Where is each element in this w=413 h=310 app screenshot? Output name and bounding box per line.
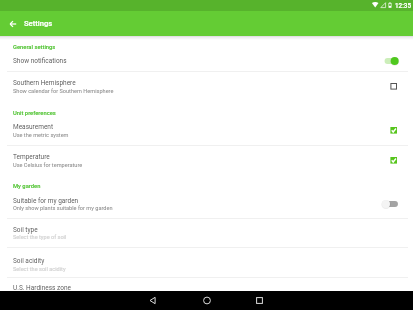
staticText: Soil acidity [13,257,45,265]
button[interactable]: Southern Hemisphere [0,72,413,100]
button[interactable]: Navigate up [3,12,23,36]
staticText: U.S. Hardiness zone [13,284,71,292]
button[interactable]: Suitable for my garden toggle, off [381,197,403,211]
staticText: Show calendar for Southern Hemisphere [13,88,114,95]
staticText: General settings [13,44,56,51]
button[interactable]: Home [188,291,225,310]
staticText: Select the type of soil [13,234,67,241]
staticText: My garden [13,183,41,190]
button[interactable]: Back [134,291,171,310]
button[interactable]: Recent apps [241,291,278,310]
button[interactable]: Show notifications toggle, on [381,54,403,68]
staticText: Only show plants suitable for my garden [13,205,113,212]
staticText: Soil type [13,226,38,234]
button[interactable]: Checkbox, checked [386,153,401,168]
button[interactable]: Show notifications [0,52,413,72]
button[interactable]: Temperature [0,146,413,175]
button[interactable]: Suitable for my garden [0,190,413,218]
staticText: Use the metric system [13,132,69,139]
staticText: Use Celsius for temperature [13,162,83,169]
staticText: Select the soil acidity [13,266,66,273]
staticText: Show notifications [13,57,67,65]
staticText: Temperature [13,153,50,161]
staticText: Measurement [13,123,54,131]
button[interactable]: Checkbox, checked [386,123,401,138]
button[interactable]: Soil type [0,219,413,247]
button[interactable]: Checkbox, unchecked [386,79,401,94]
button[interactable]: Soil acidity [0,248,413,276]
button[interactable]: Measurement [0,117,413,145]
button[interactable]: U.S. Hardiness zone [0,278,413,291]
staticText: 12:35 [395,2,411,9]
staticText: Southern Hemisphere [13,79,76,87]
staticText: Unit preferences [13,110,56,117]
staticText: Settings [24,19,53,28]
staticText: Suitable for my garden [13,197,79,205]
